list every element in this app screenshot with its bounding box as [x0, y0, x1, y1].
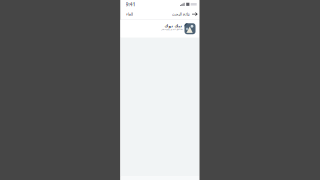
staticText: إلغاء: [125, 12, 132, 16]
staticText: 9:41: [125, 1, 135, 8]
button[interactable]: إلغاء: [125, 10, 133, 18]
button[interactable]: Back to search results: [171, 10, 198, 18]
staticText: مقاطع فيديو وموسيقى: [160, 28, 182, 31]
staticText: نتائج البحث: [171, 12, 189, 16]
staticText: تيك توك: [164, 23, 182, 28]
button[interactable]: تيك توك: [120, 20, 199, 37]
